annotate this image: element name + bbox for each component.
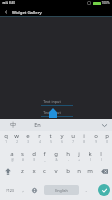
button[interactable]: n (73, 163, 84, 179)
button[interactable]: s (17, 148, 28, 164)
button[interactable]: ?123 (2, 182, 17, 198)
button[interactable]: c (39, 163, 50, 179)
staticText: English (55, 188, 68, 193)
staticText: + (78, 158, 80, 162)
button[interactable]: a (6, 148, 17, 164)
staticText: @ (11, 158, 14, 162)
staticText: 0 (106, 140, 108, 144)
staticText: k (88, 150, 92, 158)
staticText: o (94, 132, 98, 140)
staticText: r (38, 132, 41, 140)
staticText: b (66, 167, 70, 175)
button[interactable]: w (11, 130, 22, 146)
staticText: l (100, 150, 102, 158)
staticText: j (78, 150, 80, 158)
button[interactable]: Backspace (98, 163, 111, 179)
button[interactable]: g (50, 148, 61, 164)
staticText: i (83, 132, 85, 140)
staticText: Text input (43, 99, 61, 104)
button[interactable]: o (90, 130, 101, 146)
staticText: x (32, 167, 36, 175)
staticText: & (55, 158, 58, 162)
button[interactable]: m (84, 163, 95, 179)
button[interactable]: b (62, 163, 73, 179)
staticText: a (10, 150, 14, 158)
button[interactable]: u (67, 130, 78, 146)
button[interactable]: En (31, 119, 43, 131)
button[interactable]: l (95, 148, 106, 164)
button[interactable]: y (56, 130, 67, 146)
staticText: En (34, 121, 41, 129)
button[interactable]: Change language (28, 182, 40, 198)
staticText: m (87, 167, 93, 175)
staticText: d (32, 150, 36, 158)
staticText: - (68, 158, 69, 162)
staticText: 中 (10, 121, 17, 129)
button[interactable]: r (34, 130, 45, 146)
staticText: 2 (16, 140, 18, 144)
button[interactable]: k (84, 148, 95, 164)
staticText: 4 (39, 140, 41, 144)
staticText: Text input (43, 110, 61, 115)
staticText: 5 (50, 140, 52, 144)
button[interactable]: Shift (2, 163, 14, 179)
staticText: 7 (72, 140, 74, 144)
button[interactable]: j (73, 148, 84, 164)
button[interactable]: i (78, 130, 89, 146)
staticText: s (21, 150, 24, 158)
staticText: u (71, 132, 75, 140)
button[interactable]: x (28, 163, 39, 179)
staticText: □ (87, 1, 91, 5)
staticText: Widget Gallery (12, 9, 42, 15)
button[interactable]: q (0, 130, 11, 146)
staticText: h (66, 150, 70, 158)
staticText: w (14, 132, 19, 140)
staticText: ?123 (6, 188, 14, 193)
button[interactable]: h (62, 148, 73, 164)
staticText: $ (33, 158, 35, 162)
staticText: 100% (101, 1, 110, 5)
staticText: ) (101, 158, 102, 162)
staticText: z (21, 167, 24, 175)
staticText: # (22, 158, 24, 162)
staticText: c (43, 167, 46, 175)
staticText: 1 (5, 140, 7, 144)
button[interactable]: Enter (98, 184, 110, 196)
staticText: 周四 8:30 (2, 1, 15, 5)
staticText: , (22, 187, 24, 193)
staticText: _ (44, 158, 46, 162)
staticText: f (43, 150, 46, 158)
button[interactable]: 中 (7, 119, 19, 131)
staticText: 3 (27, 140, 29, 144)
button[interactable]: v (50, 163, 61, 179)
button[interactable]: English (44, 185, 79, 195)
button[interactable]: t (45, 130, 56, 146)
staticText: 6 (61, 140, 63, 144)
staticText: g (54, 150, 58, 158)
staticText: n (77, 167, 81, 175)
button[interactable]: Back (0, 7, 11, 17)
staticText: t (49, 132, 52, 140)
staticText: 9 (95, 140, 97, 144)
button[interactable]: d (28, 148, 39, 164)
staticText: v (54, 167, 58, 175)
staticText: . (85, 187, 87, 193)
staticText: ( (90, 158, 91, 162)
staticText: y (60, 132, 64, 140)
button[interactable]: z (17, 163, 28, 179)
button[interactable]: Hide keyboard (98, 119, 110, 131)
staticText: e (26, 132, 30, 140)
button[interactable]: f (39, 148, 50, 164)
staticText: p (105, 132, 109, 140)
button[interactable]: e (22, 130, 33, 146)
staticText: 8 (83, 140, 85, 144)
button[interactable]: p (101, 130, 112, 146)
staticText: q (4, 132, 8, 140)
